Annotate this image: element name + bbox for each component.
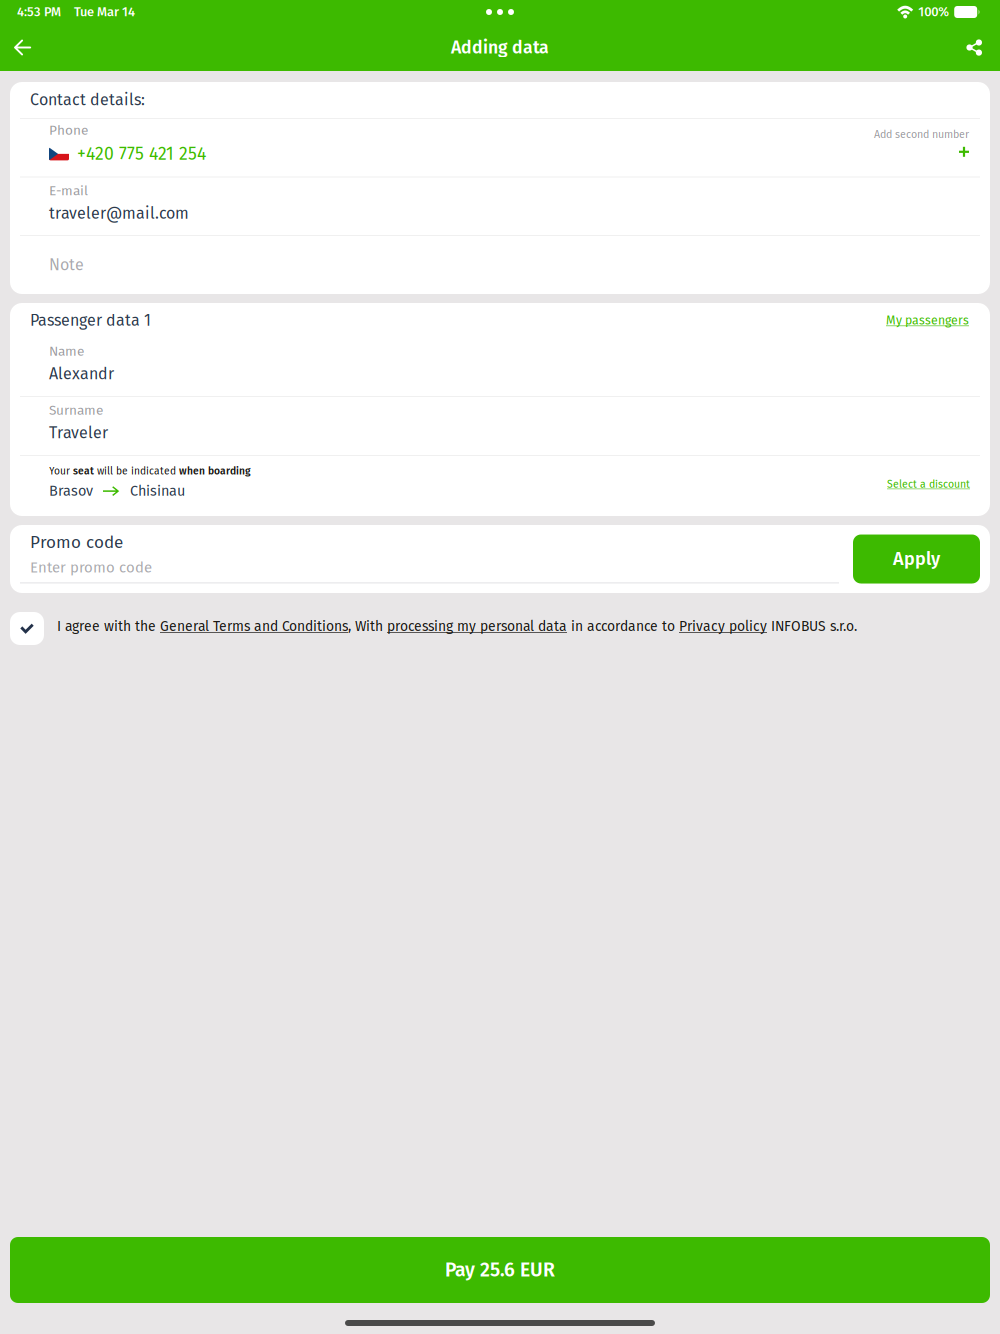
staticText: Add second number [874,128,969,141]
staticText: Alexandr [49,364,114,383]
button[interactable]: Select a discount [887,478,990,491]
staticText: Surname [49,402,103,418]
staticText: Your seat will be indicated when boardin… [49,465,251,477]
staticText: E-mail [49,182,88,199]
staticText: 100% [918,4,949,20]
staticText: Adding data [451,37,549,58]
staticText: Promo code [30,532,123,552]
staticText: My passengers [886,313,969,328]
staticText: Enter promo code [30,558,152,576]
staticText: Tue Mar 14 [74,4,135,20]
staticText: 4:53 PM [17,4,61,20]
staticText: Select a discount [887,478,970,491]
button[interactable]: Apply [853,534,980,583]
staticText: traveler@mail.com [49,204,189,223]
staticText: Name [49,343,84,359]
button[interactable]: My passengers [886,313,990,328]
button[interactable]: Add second number [874,119,990,176]
staticText: Note [49,255,84,275]
staticText: Brasov [49,482,93,500]
staticText: I agree with the General Terms and Condi… [57,618,857,635]
staticText: +420 775 421 254 [77,143,206,164]
staticText: Phone [49,122,88,138]
staticText: Apply [893,548,940,570]
button[interactable]: Back [0,25,44,69]
staticText: Traveler [49,423,108,442]
staticText: Contact details: [30,90,145,110]
button[interactable]: Share [952,25,996,69]
staticText: Chisinau [130,482,185,500]
button[interactable]: I agree to the terms [10,612,44,645]
staticText: Passenger data 1 [30,311,151,330]
button[interactable]: Pay 25.6 EUR [10,1237,990,1303]
staticText: Pay 25.6 EUR [445,1258,555,1282]
